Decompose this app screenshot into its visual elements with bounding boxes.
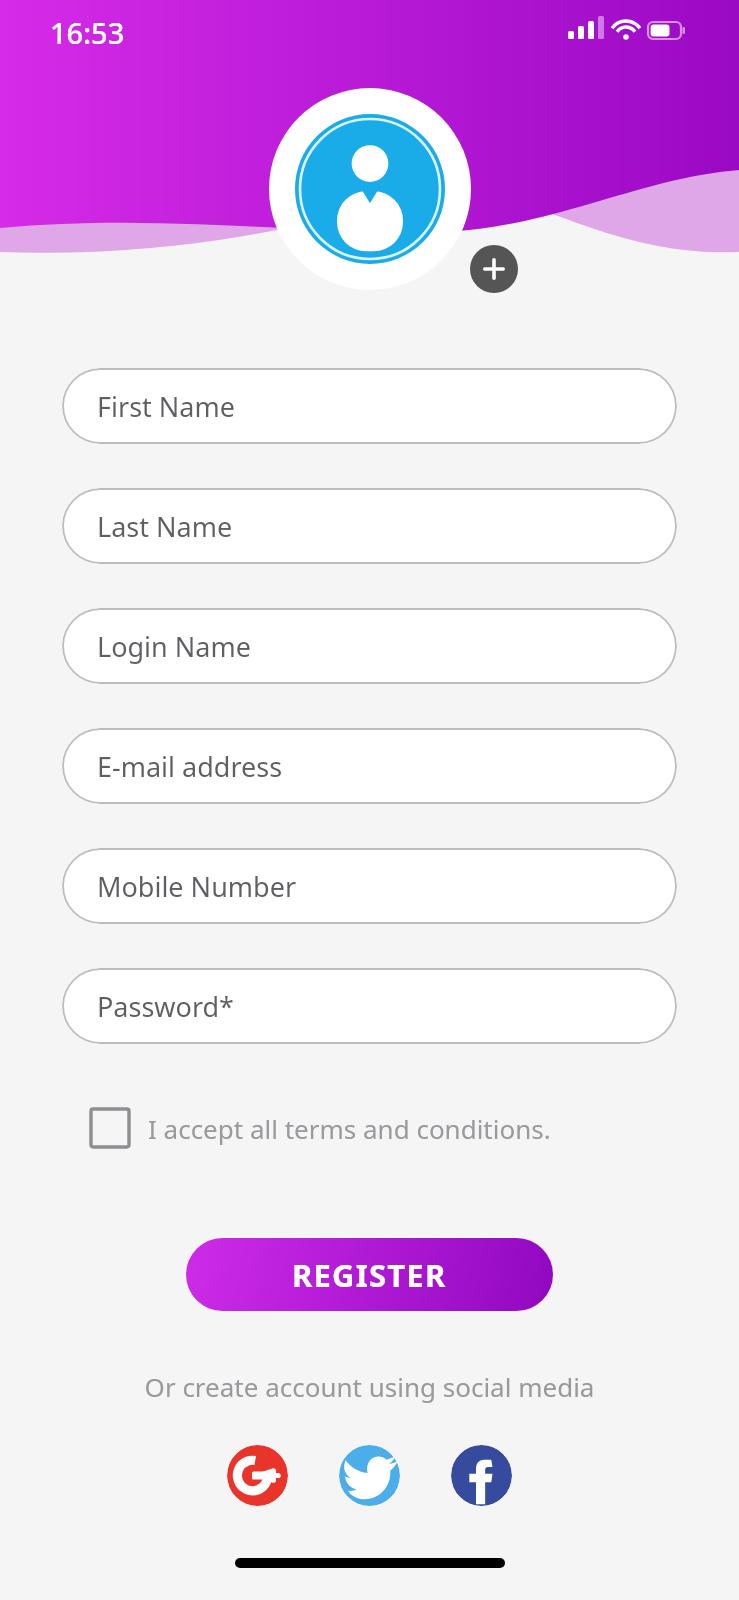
staticText: Last Name [97,508,233,545]
button[interactable]: REGISTER [186,1238,553,1311]
staticText: REGISTER [292,1254,447,1296]
button[interactable]: Twitter [339,1445,400,1506]
button[interactable]: Facebook [451,1445,512,1506]
staticText: Password* [97,988,234,1025]
button[interactable]: Password* [62,968,677,1044]
button[interactable]: Google Plus [227,1445,288,1506]
button[interactable]: Login Name [62,608,677,684]
button[interactable]: Profile photo [269,88,471,290]
staticText: Login Name [97,628,251,665]
button[interactable]: Add photo [470,245,518,293]
staticText: 16:53 [50,13,125,52]
staticText: First Name [97,388,235,425]
staticText: Mobile Number [97,868,297,905]
button[interactable]: Last Name [62,488,677,564]
button[interactable]: Mobile Number [62,848,677,924]
button[interactable]: I accept all terms and conditions. [85,1103,551,1153]
button[interactable]: E-mail address [62,728,677,804]
staticText: I accept all terms and conditions. [148,1111,551,1146]
button[interactable]: First Name [62,368,677,444]
staticText: E-mail address [97,748,283,785]
staticText: Or create account using social media [0,1369,739,1404]
